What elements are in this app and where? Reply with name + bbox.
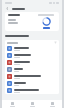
button[interactable]: Clean [25,100,39,108]
button[interactable]: Browse [5,100,19,108]
button[interactable] [5,52,59,59]
button[interactable]: Sort [54,41,57,44]
button[interactable]: Share [45,100,59,108]
button[interactable] [5,66,59,73]
button[interactable]: Back [5,6,10,11]
button[interactable] [5,73,59,80]
button[interactable] [5,87,59,94]
button[interactable] [5,12,59,31]
button[interactable] [5,45,59,52]
button[interactable] [5,59,59,66]
button[interactable] [5,80,59,87]
